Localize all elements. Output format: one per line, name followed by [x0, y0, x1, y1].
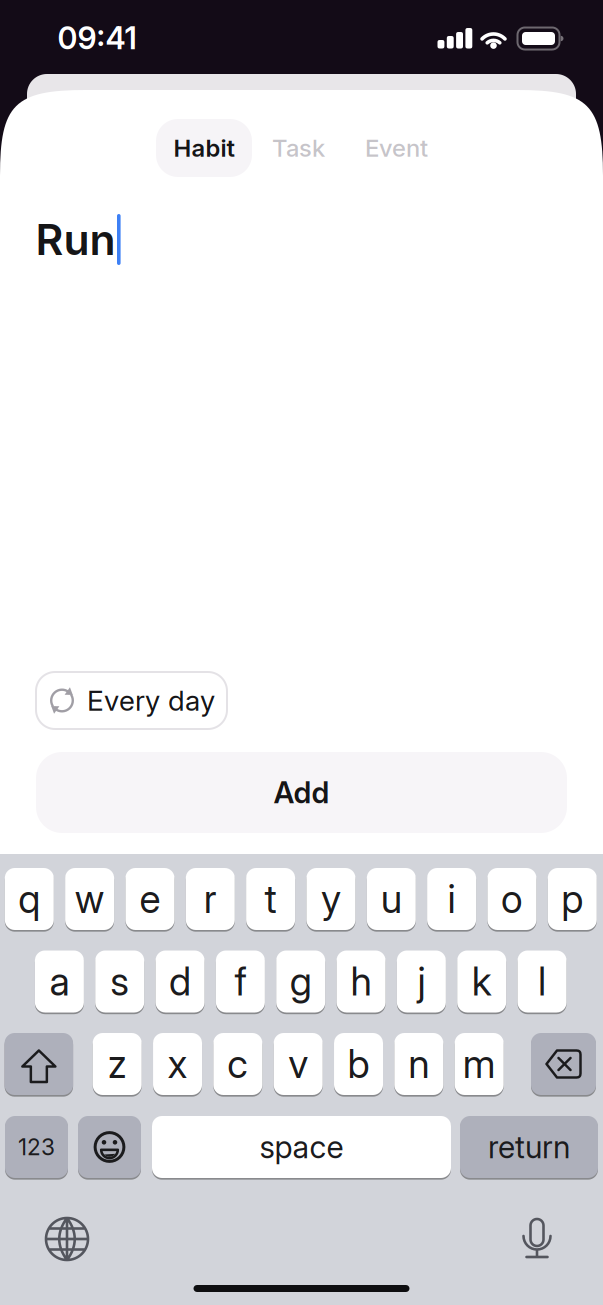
button[interactable]: Task: [258, 119, 338, 177]
button[interactable]: k: [457, 950, 506, 1012]
button[interactable]: h: [336, 950, 385, 1012]
button[interactable]: Add: [36, 752, 567, 833]
staticText: h: [350, 959, 371, 1004]
staticText: z: [108, 1041, 127, 1087]
button[interactable]: Event: [351, 119, 441, 177]
staticText: q: [18, 876, 40, 922]
staticText: x: [167, 1041, 187, 1087]
button[interactable]: b: [334, 1033, 383, 1095]
button[interactable]: i: [427, 868, 476, 930]
button[interactable]: v: [274, 1033, 323, 1095]
staticText: y: [321, 876, 341, 922]
button[interactable]: a: [35, 950, 84, 1012]
button[interactable]: m: [455, 1033, 504, 1095]
button[interactable]: x: [153, 1033, 202, 1095]
staticText: p: [561, 876, 583, 922]
button[interactable]: Delete: [531, 1033, 596, 1095]
staticText: return: [488, 1129, 570, 1165]
staticText: a: [49, 959, 69, 1004]
button[interactable]: y: [306, 868, 355, 930]
button[interactable]: p: [548, 868, 597, 930]
button[interactable]: d: [156, 950, 205, 1012]
button[interactable]: space: [152, 1116, 451, 1178]
button[interactable]: o: [487, 868, 536, 930]
staticText: 123: [18, 1134, 55, 1160]
staticText: 09:41: [57, 20, 136, 56]
staticText: Every day: [87, 684, 215, 717]
staticText: m: [463, 1041, 496, 1087]
button[interactable]: return: [460, 1116, 598, 1178]
button[interactable]: u: [367, 868, 416, 930]
button[interactable]: l: [517, 950, 566, 1012]
button[interactable]: w: [65, 868, 114, 930]
button[interactable]: Shift: [5, 1033, 73, 1095]
staticText: space: [259, 1129, 343, 1165]
button[interactable]: Every day: [36, 672, 227, 729]
staticText: n: [408, 1041, 429, 1087]
staticText: d: [169, 959, 191, 1004]
button[interactable]: c: [213, 1033, 262, 1095]
button[interactable]: Run: [35, 214, 121, 265]
button[interactable]: z: [93, 1033, 142, 1095]
staticText: Task: [272, 134, 325, 162]
button[interactable]: Habit: [156, 119, 252, 177]
staticText: Habit: [173, 134, 234, 162]
staticText: Add: [273, 775, 329, 810]
staticText: w: [75, 876, 105, 922]
staticText: Event: [365, 134, 428, 162]
staticText: b: [347, 1041, 369, 1087]
button[interactable]: q: [5, 868, 54, 930]
button[interactable]: Next keyboard: [39, 1211, 95, 1267]
button[interactable]: 123: [5, 1116, 68, 1178]
staticText: u: [381, 876, 402, 922]
button[interactable]: s: [95, 950, 144, 1012]
button[interactable]: n: [394, 1033, 443, 1095]
staticText: c: [227, 1041, 248, 1087]
button[interactable]: Emoji: [78, 1116, 141, 1178]
button[interactable]: Dictation: [509, 1208, 565, 1268]
staticText: l: [538, 959, 546, 1004]
staticText: f: [234, 959, 246, 1004]
button[interactable]: f: [216, 950, 265, 1012]
staticText: i: [448, 876, 456, 922]
staticText: o: [501, 876, 523, 922]
button[interactable]: t: [246, 868, 295, 930]
staticText: t: [265, 876, 277, 922]
button[interactable]: e: [125, 868, 174, 930]
staticText: g: [290, 959, 312, 1004]
button[interactable]: r: [186, 868, 235, 930]
staticText: r: [204, 876, 217, 922]
button[interactable]: j: [397, 950, 446, 1012]
button[interactable]: g: [276, 950, 325, 1012]
staticText: s: [110, 959, 129, 1004]
staticText: j: [417, 959, 425, 1004]
staticText: k: [472, 959, 492, 1004]
staticText: Run: [35, 214, 115, 265]
staticText: e: [139, 876, 160, 922]
staticText: v: [288, 1041, 308, 1087]
